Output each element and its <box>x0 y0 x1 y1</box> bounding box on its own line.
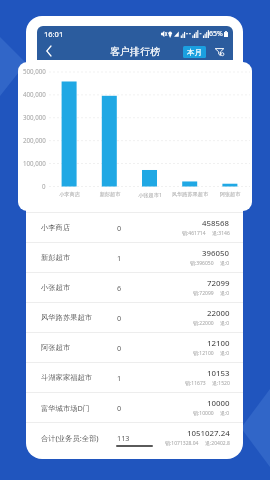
staticText: 458568 <box>202 218 230 229</box>
button[interactable]: 小张超市 <box>26 272 243 302</box>
staticText: 富华城市场D门 <box>41 403 91 413</box>
staticText: 退:0 <box>220 320 230 327</box>
staticText: 本月 <box>187 48 202 57</box>
staticText: 销:11673 <box>185 380 206 387</box>
staticText: 退:3146 <box>212 230 230 237</box>
staticText: 销:72099 <box>193 290 214 297</box>
staticText: 72099 <box>207 278 230 289</box>
staticText: 退:0 <box>220 410 230 417</box>
staticText: 0 <box>42 182 46 192</box>
staticText: 斗湖家家福超市 <box>41 373 93 382</box>
staticText: 0 <box>117 313 122 323</box>
button[interactable]: 新彭超市 <box>26 242 243 272</box>
staticText: 10000 <box>207 398 230 409</box>
staticText: 销:396050 <box>190 260 214 267</box>
staticText: 风华路苏果超市 <box>170 191 210 198</box>
staticText: 100,000 <box>23 159 46 169</box>
button[interactable]: 富华城市场D门 <box>26 392 243 422</box>
staticText: 65% <box>209 29 223 39</box>
staticText: 200,000 <box>23 136 46 146</box>
staticText: 客户排行榜 <box>110 45 160 58</box>
button[interactable]: Filter <box>212 42 226 60</box>
staticText: 销:1071328.04 <box>165 440 199 447</box>
staticText: 新彭超市 <box>90 191 130 198</box>
staticText: 小张超市1 <box>130 191 170 198</box>
staticText: 0 <box>117 343 122 353</box>
button[interactable]: 合计(业务员:全部) <box>26 422 243 452</box>
staticText: 16:01 <box>44 29 64 39</box>
staticText: 10153 <box>207 368 230 379</box>
staticText: 1 <box>117 373 122 383</box>
button[interactable]: 本月 <box>183 46 206 58</box>
staticText: 小张超市 <box>41 283 71 292</box>
staticText: 12100 <box>207 338 230 349</box>
staticText: 396050 <box>202 248 230 259</box>
staticText: 退:0 <box>220 290 230 297</box>
staticText: 销:12100 <box>193 350 214 357</box>
staticText: 风华路苏果超市 <box>41 313 93 322</box>
staticText: 6 <box>117 283 122 293</box>
staticText: 阿张超市 <box>210 191 250 198</box>
staticText: 退:20402.8 <box>205 440 230 447</box>
button[interactable]: Back <box>37 42 59 60</box>
staticText: 销:10000 <box>193 410 214 417</box>
button[interactable]: 小李商店 <box>26 212 243 242</box>
staticText: 0 <box>117 223 122 233</box>
staticText: 1051027.24 <box>187 428 230 439</box>
staticText: 0 <box>117 403 122 413</box>
staticText: 400,000 <box>23 90 46 100</box>
staticText: 退:1520 <box>212 380 230 387</box>
staticText: 22000 <box>207 308 230 319</box>
staticText: 退:0 <box>220 260 230 267</box>
staticText: 1 <box>117 253 122 263</box>
staticText: 113 <box>117 433 130 443</box>
staticText: 阿张超市 <box>41 343 71 352</box>
staticText: 退:0 <box>220 350 230 357</box>
staticText: 销:22000 <box>193 320 214 327</box>
button[interactable]: 风华路苏果超市 <box>26 302 243 332</box>
staticText: 300,000 <box>23 113 46 123</box>
staticText: 新彭超市 <box>41 253 71 262</box>
staticText: 合计(业务员:全部) <box>41 433 99 443</box>
staticText: 销:461714 <box>182 230 206 237</box>
button[interactable]: 阿张超市 <box>26 332 243 362</box>
staticText: 500,000 <box>23 67 46 77</box>
staticText: 小李商店 <box>49 191 90 198</box>
staticText: 小李商店 <box>41 223 71 232</box>
button[interactable]: 斗湖家家福超市 <box>26 362 243 392</box>
